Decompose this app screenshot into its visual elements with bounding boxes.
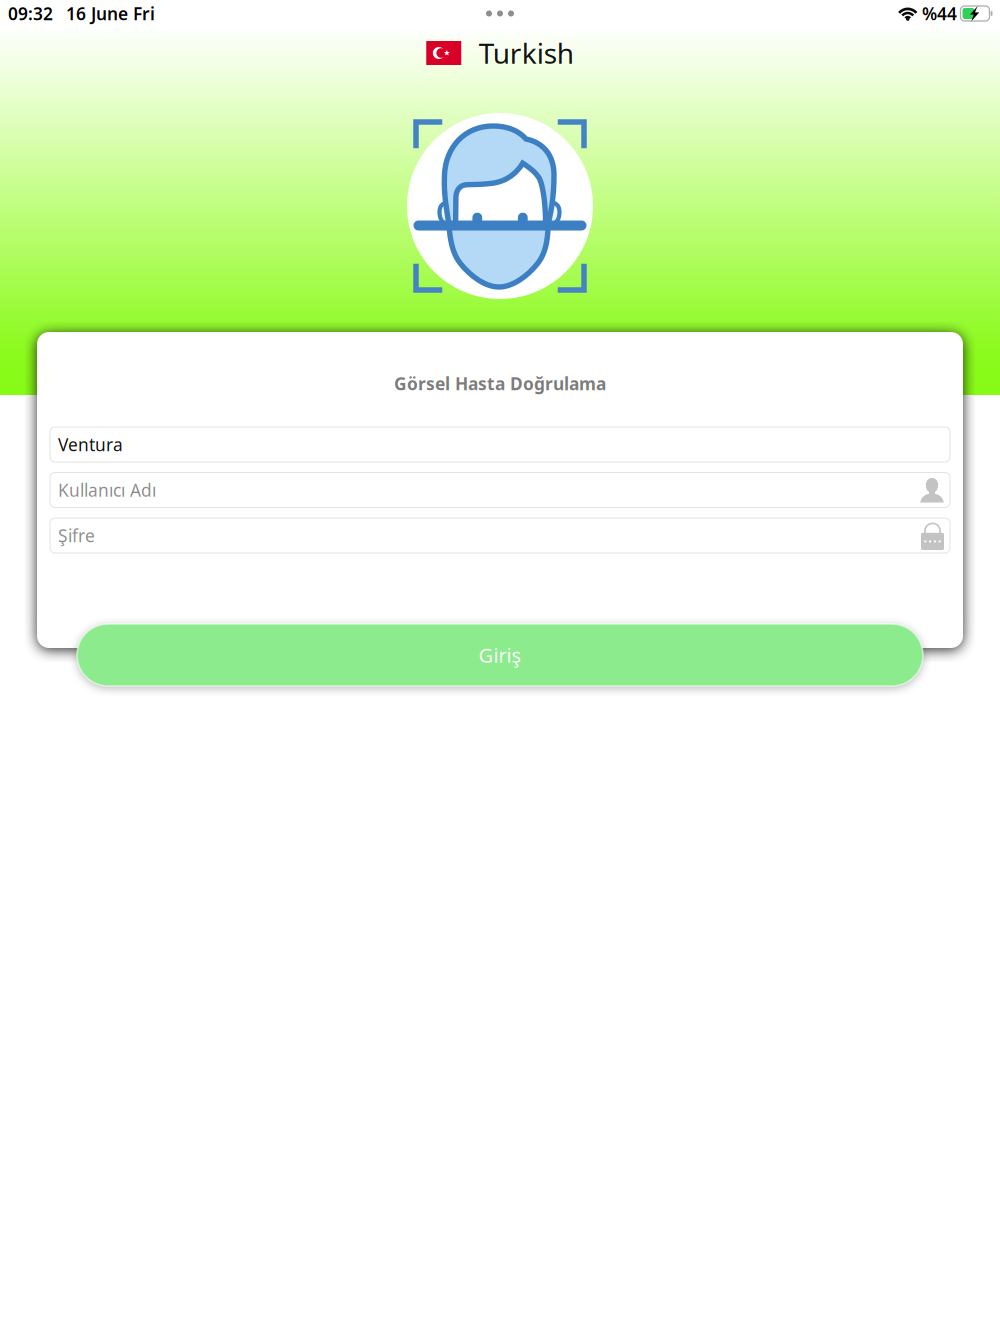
staticText: 09:32 — [8, 2, 53, 25]
staticText: Şifre — [58, 524, 95, 547]
staticText: 16 June Fri — [66, 2, 155, 25]
staticText: Kullanıcı Adı — [58, 478, 156, 501]
staticText: %44 — [922, 2, 957, 25]
staticText: Giriş — [478, 642, 521, 668]
button[interactable]: Giriş — [77, 624, 923, 686]
staticText: Turkish — [479, 34, 574, 72]
staticText: Ventura — [58, 433, 123, 456]
staticText: Görsel Hasta Doğrulama — [394, 372, 606, 395]
button[interactable]: Turkish — [426, 40, 574, 66]
